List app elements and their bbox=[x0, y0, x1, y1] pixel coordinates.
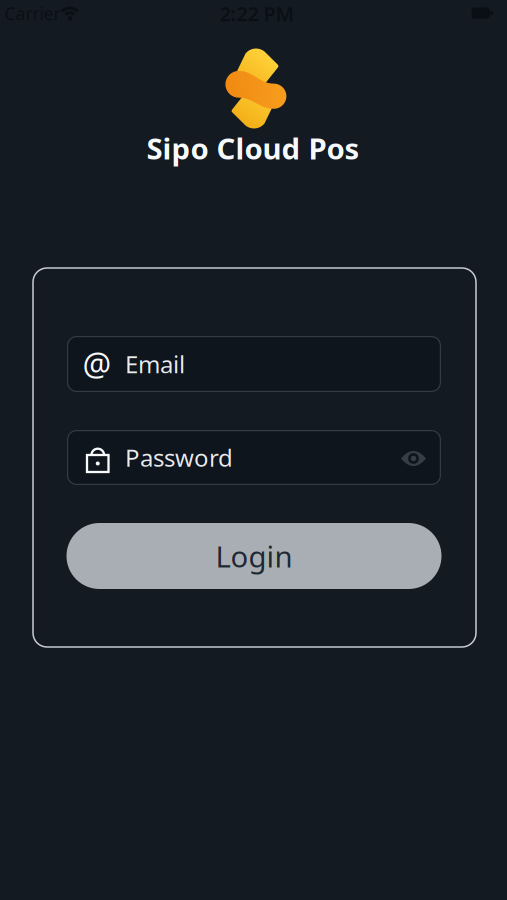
button[interactable]: Password bbox=[67, 430, 441, 485]
button[interactable] bbox=[393, 438, 433, 478]
staticText: Password bbox=[125, 442, 233, 473]
staticText: Carrier bbox=[4, 2, 60, 25]
button[interactable]: Login bbox=[66, 523, 441, 589]
staticText: 2:22 PM bbox=[219, 0, 294, 27]
staticText: Sipo Cloud Pos bbox=[146, 128, 359, 167]
staticText: Login bbox=[215, 536, 292, 575]
staticText: Email bbox=[125, 348, 185, 380]
button[interactable]: @ bbox=[67, 336, 441, 392]
staticText: @ bbox=[82, 343, 111, 385]
